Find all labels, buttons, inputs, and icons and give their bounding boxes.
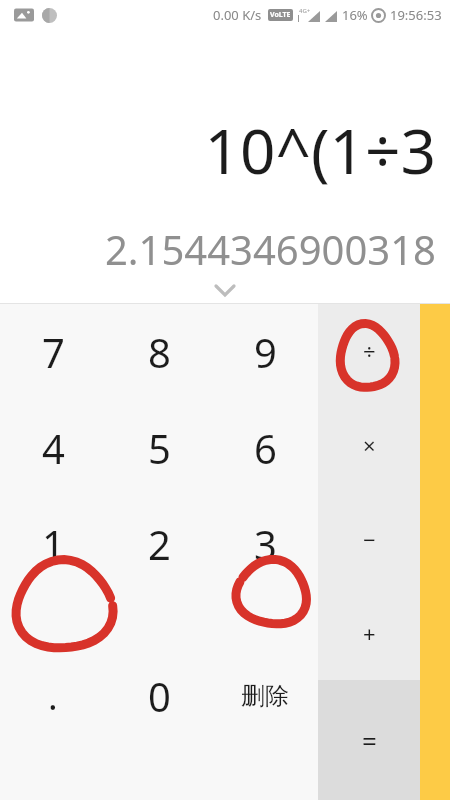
button[interactable]: 1: [0, 496, 106, 592]
staticText: 5: [148, 421, 171, 475]
button[interactable]: 9: [212, 304, 318, 400]
staticText: 16%: [342, 6, 368, 24]
staticText: +: [363, 618, 376, 648]
button[interactable]: .: [0, 592, 106, 800]
button[interactable]: 0: [106, 592, 212, 800]
staticText: ÷: [363, 336, 376, 366]
staticText: 4: [42, 421, 65, 475]
button[interactable]: 删除: [212, 592, 318, 800]
staticText: 0.00 K/s: [213, 6, 262, 24]
button[interactable]: 3: [212, 496, 318, 592]
staticText: ×: [363, 430, 376, 460]
button[interactable]: =: [318, 680, 420, 800]
button[interactable]: −: [318, 492, 420, 586]
staticText: 7: [42, 325, 65, 379]
staticText: 8: [148, 325, 171, 379]
staticText: 19:56:53: [390, 6, 442, 24]
staticText: 1: [42, 517, 65, 571]
staticText: .: [48, 672, 58, 721]
button[interactable]: 8: [106, 304, 212, 400]
staticText: 删除: [241, 681, 289, 711]
button[interactable]: 7: [0, 304, 106, 400]
button[interactable]: 2: [106, 496, 212, 592]
staticText: 4G+: [299, 7, 311, 15]
button[interactable]: 5: [106, 400, 212, 496]
staticText: 9: [254, 325, 277, 379]
button[interactable]: +: [318, 586, 420, 680]
button[interactable]: ÷: [318, 304, 420, 398]
staticText: 10^(1÷3: [204, 108, 436, 192]
button[interactable]: 6: [212, 400, 318, 496]
button[interactable]: Collapse history: [202, 277, 248, 303]
staticText: =: [362, 723, 377, 758]
staticText: 2.1544346900318: [104, 222, 436, 276]
staticText: 0: [148, 669, 171, 723]
staticText: 3: [254, 517, 277, 571]
button[interactable]: 4: [0, 400, 106, 496]
staticText: −: [363, 524, 376, 554]
staticText: VoLTE: [270, 10, 291, 20]
button[interactable]: ×: [318, 398, 420, 492]
staticText: 2: [148, 517, 171, 571]
staticText: 6: [254, 421, 277, 475]
